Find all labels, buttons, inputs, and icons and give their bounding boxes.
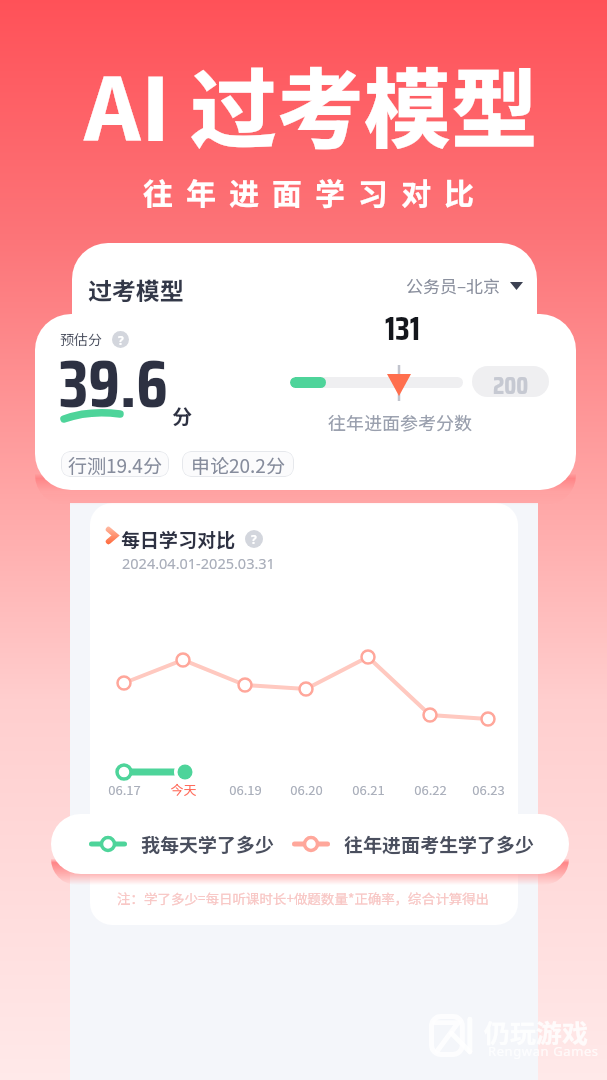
staticText: 每日学习对比 bbox=[121, 525, 236, 553]
staticText: 今天 bbox=[170, 780, 197, 799]
staticText: 2024.04.01-2025.03.31 bbox=[122, 553, 275, 573]
staticText: ? bbox=[251, 531, 257, 547]
button[interactable] bbox=[293, 828, 329, 860]
button[interactable]: 公务员–北京 bbox=[406, 273, 523, 298]
staticText: 注：学了多少=每日听课时长+做题数量*正确率，综合计算得出 bbox=[117, 888, 490, 908]
staticText: 公务员–北京 bbox=[406, 273, 501, 298]
staticText: 往年进面学习对比 bbox=[143, 170, 487, 213]
staticText: 往年进面参考分数 bbox=[328, 409, 472, 435]
staticText: 申论20.2分 bbox=[191, 451, 285, 477]
staticText: 06.20 bbox=[290, 780, 323, 799]
staticText: 预估分 bbox=[60, 329, 102, 349]
staticText: 131 bbox=[385, 314, 420, 355]
staticText: 过考模型 bbox=[88, 272, 184, 307]
button[interactable]: 申论20.2分 bbox=[182, 451, 294, 477]
button[interactable]: 行测19.4分 bbox=[61, 451, 169, 477]
staticText: 分 bbox=[172, 401, 192, 430]
staticText: 200 bbox=[493, 366, 529, 397]
staticText: 39.6 bbox=[59, 331, 168, 436]
staticText: 我每天学了多少 bbox=[141, 830, 275, 858]
staticText: 06.19 bbox=[229, 780, 262, 799]
staticText: ? bbox=[118, 332, 124, 348]
staticText: 06.22 bbox=[414, 780, 447, 799]
staticText: 06.21 bbox=[352, 780, 385, 799]
staticText: 06.23 bbox=[472, 780, 505, 799]
staticText: Rengwan Games bbox=[488, 1042, 599, 1060]
staticText: 往年进面考生学了多少 bbox=[344, 830, 535, 858]
staticText: AI 过考模型 bbox=[84, 40, 539, 166]
staticText: 06.17 bbox=[108, 780, 141, 799]
button[interactable] bbox=[90, 828, 126, 860]
staticText: 仍玩游戏 bbox=[484, 1013, 589, 1051]
staticText: 行测19.4分 bbox=[68, 451, 162, 477]
